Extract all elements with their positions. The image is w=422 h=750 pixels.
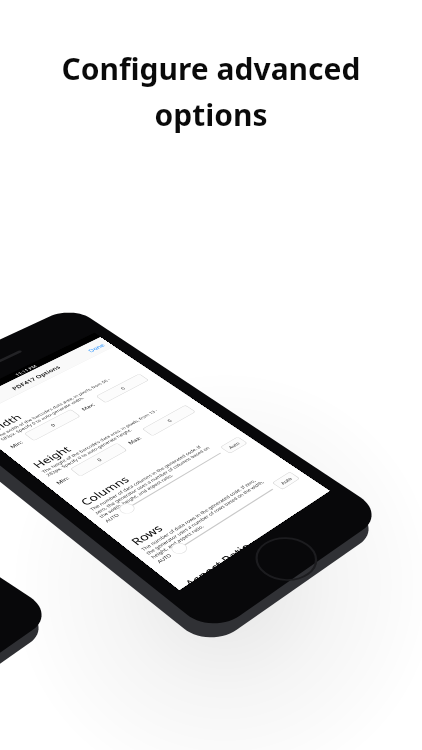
button[interactable] [0, 0, 422, 750]
